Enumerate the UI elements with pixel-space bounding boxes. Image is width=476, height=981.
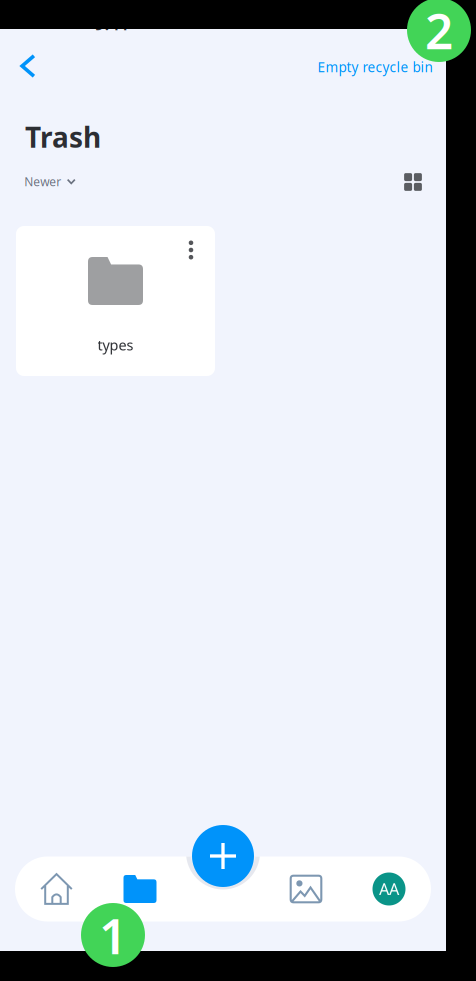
staticText: 9:41 bbox=[94, 12, 129, 35]
button[interactable]: Back bbox=[6, 44, 50, 88]
staticText: 1 bbox=[99, 901, 127, 969]
button[interactable]: Empty recycle bin bbox=[309, 50, 440, 84]
button[interactable]: More options for types bbox=[176, 235, 206, 265]
staticText: Empty recycle bin bbox=[317, 58, 432, 76]
staticText: types bbox=[97, 335, 133, 355]
button[interactable]: Home bbox=[25, 857, 87, 921]
button[interactable]: types bbox=[16, 226, 215, 376]
button[interactable]: Files bbox=[109, 857, 171, 921]
staticText: AA bbox=[379, 878, 399, 900]
staticText: Trash bbox=[25, 118, 101, 156]
button[interactable]: Create new bbox=[192, 825, 254, 887]
staticText: 2 bbox=[425, 0, 453, 64]
button[interactable]: Change view mode bbox=[396, 165, 430, 199]
button[interactable]: Account bbox=[358, 857, 420, 921]
staticText: Newer bbox=[24, 173, 61, 190]
button[interactable]: Photos bbox=[275, 857, 337, 921]
button[interactable]: Newer bbox=[20, 166, 80, 197]
